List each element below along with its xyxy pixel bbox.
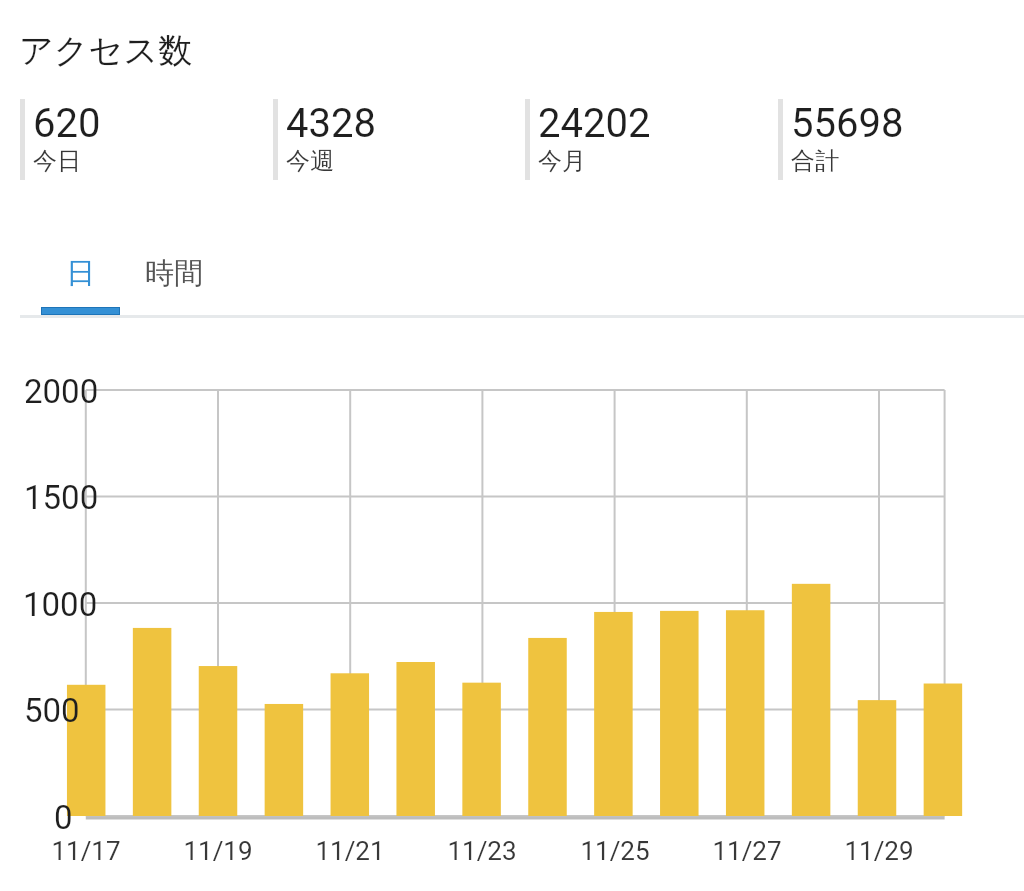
button[interactable]: 24202: [525, 99, 778, 180]
staticText: 1500: [24, 478, 99, 517]
staticText: 2000: [24, 372, 99, 411]
staticText: 620: [33, 100, 101, 147]
staticText: 55698: [791, 100, 904, 147]
staticText: 1000: [23, 585, 98, 624]
staticText: アクセス数: [19, 29, 193, 72]
staticText: 11/25: [555, 836, 675, 866]
staticText: 0: [54, 798, 73, 837]
staticText: 11/21: [290, 836, 410, 866]
staticText: 500: [24, 691, 80, 730]
button[interactable]: 時間: [94, 240, 254, 316]
staticText: 11/19: [158, 836, 278, 866]
staticText: 時間: [94, 255, 254, 292]
staticText: 11/29: [819, 836, 939, 866]
button[interactable]: 620: [20, 99, 273, 180]
button[interactable]: 55698: [778, 99, 1024, 180]
staticText: 今週: [286, 146, 334, 176]
button[interactable]: 4328: [273, 99, 526, 180]
button[interactable]: 日: [0, 240, 161, 316]
staticText: 合計: [791, 146, 839, 176]
staticText: 今月: [538, 146, 586, 176]
other: Daily access count bar chart: [0, 318, 1024, 891]
staticText: 4328: [286, 100, 376, 147]
staticText: 今日: [33, 146, 81, 176]
staticText: 11/27: [687, 836, 807, 866]
staticText: 11/17: [26, 836, 146, 866]
staticText: 24202: [538, 100, 651, 147]
staticText: 11/23: [422, 836, 542, 866]
staticText: 日: [0, 255, 161, 292]
